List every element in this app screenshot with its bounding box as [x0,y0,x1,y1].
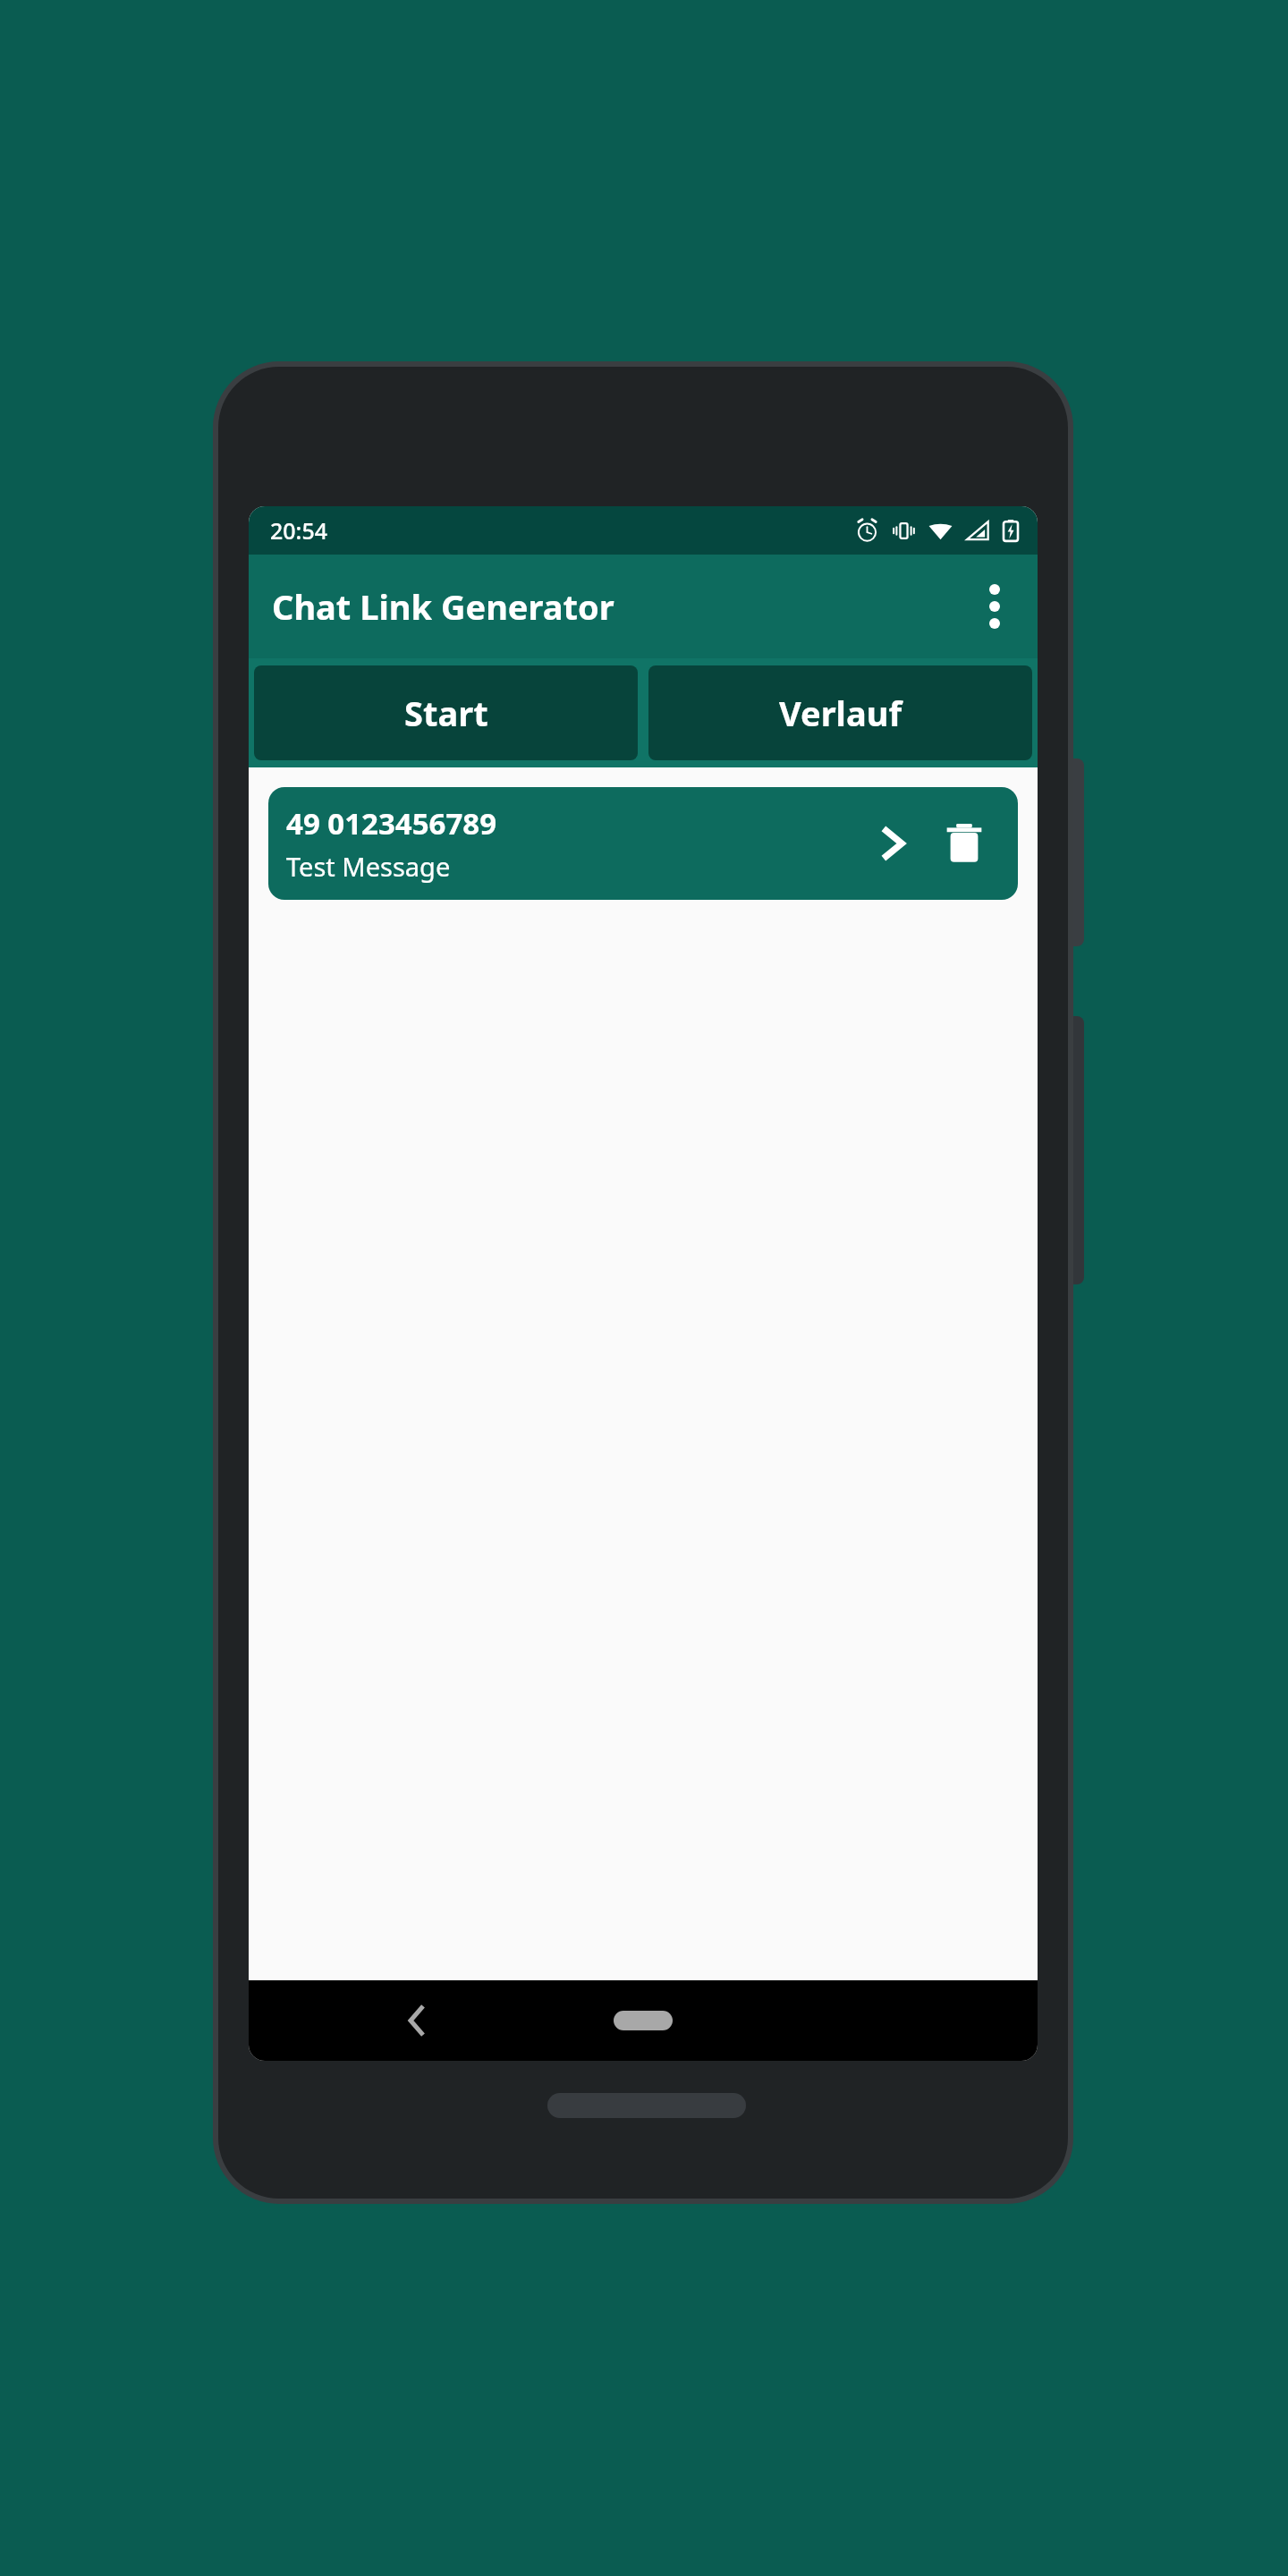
staticText: Verlauf [779,690,902,736]
button[interactable]: 49 0123456789 [268,787,1018,900]
button[interactable]: Open chat [860,811,925,876]
button[interactable]: Delete [932,811,996,876]
staticText: Test Message [286,849,451,884]
button[interactable]: Start [254,665,638,760]
button[interactable]: Verlauf [648,665,1032,760]
button[interactable]: Home [614,2011,673,2030]
button[interactable]: More options [952,563,1038,649]
staticText: 20:54 [270,515,328,546]
staticText: Chat Link Generator [272,583,614,630]
staticText: Start [404,690,488,736]
staticText: 49 0123456789 [286,803,497,843]
button[interactable]: Back [381,1985,453,2056]
